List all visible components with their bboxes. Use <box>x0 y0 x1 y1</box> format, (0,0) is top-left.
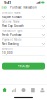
staticText: Amount <box>2 47 13 50</box>
button[interactable]: Home <box>0 85 9 95</box>
staticText: RAJESH KUMAR <box>2 15 22 19</box>
button[interactable]: More <box>38 85 47 95</box>
button[interactable]: Transact <box>19 85 28 95</box>
button[interactable]: Reports <box>28 85 38 95</box>
staticText: Back <box>1 6 6 9</box>
staticText: Payment Mode <box>2 38 22 41</box>
staticText: Fresh Purchase <box>2 33 22 37</box>
staticText: 10,000 <box>2 51 13 55</box>
staticText: Purchase Transaction <box>10 6 37 9</box>
staticText: Investor Name <box>2 11 21 14</box>
button[interactable]: Portfolio <box>9 85 19 95</box>
staticText: Flexi Cap Growth <box>2 24 24 28</box>
staticText: Net Banking <box>2 42 19 46</box>
staticText: Transaction Type <box>2 29 23 32</box>
staticText: 9:41 <box>4 0 11 5</box>
button[interactable]: PROCEED <box>0 63 47 70</box>
staticText: PROCEED <box>17 64 29 68</box>
button[interactable]: Back <box>0 6 6 9</box>
staticText: Scheme Name <box>2 20 20 23</box>
